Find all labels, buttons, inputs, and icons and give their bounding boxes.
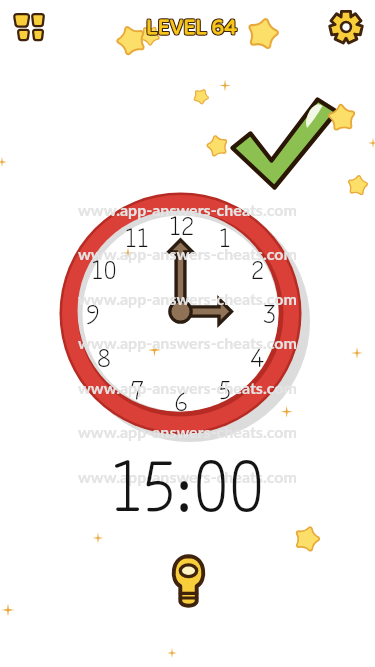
button[interactable]: Hint [157,550,219,612]
staticText: 10 [91,249,117,283]
staticText: LEVEL 64 [147,8,238,45]
staticText: 4 [250,337,264,371]
staticText: LEVEL 64 [145,8,236,45]
staticText: 9 [86,293,100,327]
staticText: LEVEL 64 [146,10,237,47]
staticText: www.app-answers-cheats.com [78,378,297,397]
staticText: LEVEL 64 [147,10,238,47]
staticText: www.app-answers-cheats.com [78,422,297,441]
staticText: www.app-answers-cheats.com [78,289,297,308]
staticText: 6 [174,381,188,415]
staticText: 2 [251,249,264,283]
staticText: LEVEL 64 [145,10,236,47]
staticText: 5 [219,369,231,403]
staticText: LEVEL 64 [146,9,237,46]
button[interactable]: Levels [4,2,54,52]
staticText: 1 [219,217,231,251]
staticText: www.app-answers-cheats.com [78,333,297,352]
staticText: LEVEL 64 [146,8,237,45]
staticText: 15:00 [111,430,265,531]
staticText: 8 [97,337,111,371]
staticText: 3 [263,293,276,327]
button[interactable]: Settings [321,2,371,52]
staticText: LEVEL 64 [147,9,238,46]
staticText: 12 [169,205,194,239]
staticText: LEVEL 64 [145,9,236,46]
staticText: www.app-answers-cheats.com [78,200,297,219]
staticText: www.app-answers-cheats.com [78,244,297,263]
staticText: www.app-answers-cheats.com [78,467,297,486]
staticText: 7 [130,369,144,403]
staticText: 11 [125,217,149,251]
